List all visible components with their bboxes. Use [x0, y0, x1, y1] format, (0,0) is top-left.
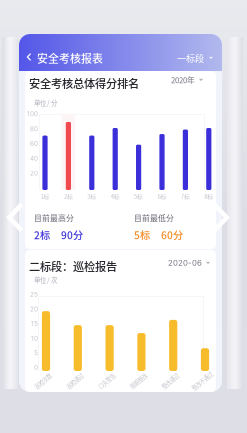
- staticText: 20: [30, 169, 38, 177]
- button[interactable]: 2020年: [171, 73, 203, 87]
- staticText: 二标段：巡检报告: [29, 258, 117, 274]
- staticText: 60: [30, 140, 38, 147]
- staticText: 7标: [181, 192, 190, 200]
- staticText: 90分: [61, 227, 83, 242]
- button[interactable]: 安全考核报表: [37, 48, 103, 68]
- staticText: 目前最低分: [134, 212, 174, 223]
- staticText: 整改通过: [160, 377, 180, 385]
- staticText: 80: [30, 125, 38, 133]
- staticText: 巡检次数: [33, 377, 53, 385]
- staticText: 20: [30, 305, 38, 313]
- staticText: 2标: [64, 192, 73, 200]
- staticText: 5标: [134, 192, 143, 200]
- staticText: 目前最高分: [34, 212, 74, 223]
- staticText: 整改不通过: [189, 377, 214, 385]
- staticText: 巡检通过: [65, 377, 85, 385]
- staticText: 100: [27, 110, 38, 118]
- staticText: 60分: [161, 227, 183, 242]
- staticText: 安全考核报表: [37, 50, 103, 66]
- staticText: 限期整改: [128, 377, 148, 385]
- staticText: 10: [31, 334, 38, 342]
- staticText: 8标: [204, 192, 213, 200]
- button[interactable]: 返回: [19, 46, 39, 68]
- staticText: 1标: [40, 192, 49, 200]
- button[interactable]: 一标段: [177, 48, 213, 68]
- staticText: 2标: [34, 227, 50, 242]
- staticText: 15: [31, 320, 38, 327]
- staticText: 3标: [87, 192, 96, 200]
- staticText: 40: [30, 154, 38, 162]
- staticText: 单位 / 分: [34, 98, 57, 107]
- staticText: 5: [34, 349, 38, 357]
- staticText: 口头警告: [97, 377, 117, 385]
- staticText: 0: [34, 364, 38, 371]
- staticText: 5标: [134, 227, 150, 242]
- staticText: 6标: [157, 192, 166, 200]
- button[interactable]: 2020-06: [168, 256, 210, 270]
- staticText: 一标段: [177, 51, 204, 65]
- staticText: 25: [30, 291, 38, 298]
- staticText: 安全考核总体得分排名: [29, 75, 139, 91]
- staticText: 2020-06: [168, 258, 202, 268]
- staticText: 2020年: [171, 74, 195, 86]
- staticText: 4标: [111, 192, 120, 200]
- staticText: 单位 / 次: [34, 275, 57, 284]
